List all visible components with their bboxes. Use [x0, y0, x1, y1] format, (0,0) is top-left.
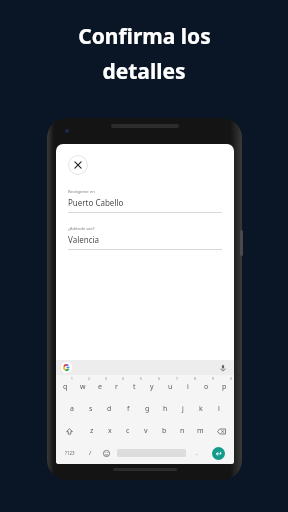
button[interactable]: x — [101, 420, 119, 442]
button[interactable]: t — [125, 375, 143, 398]
staticText: n — [180, 426, 185, 436]
button[interactable]: ¿Adónde vas? — [68, 226, 222, 250]
button[interactable]: u — [161, 375, 179, 398]
button[interactable]: Cerrar — [68, 155, 88, 175]
staticText: p — [222, 382, 227, 392]
staticText: 3 — [105, 377, 107, 381]
button[interactable]: d — [100, 398, 119, 420]
button[interactable]: b — [155, 420, 173, 442]
staticText: 6 — [158, 377, 160, 381]
staticText: x — [108, 426, 112, 436]
staticText: i — [187, 382, 189, 392]
button[interactable]: h — [156, 398, 174, 420]
staticText: 0 — [230, 377, 232, 381]
button[interactable]: s — [81, 398, 100, 420]
staticText: k — [199, 404, 203, 414]
button[interactable]: y — [143, 375, 161, 398]
staticText: m — [197, 426, 204, 436]
button[interactable]: p — [215, 375, 233, 398]
button[interactable]: i — [179, 375, 197, 398]
staticText: o — [204, 382, 209, 392]
staticText: e — [98, 382, 102, 392]
staticText: f — [127, 404, 130, 414]
button[interactable]: k — [192, 398, 210, 420]
button[interactable]: Recógeme en — [68, 189, 222, 213]
staticText: q — [63, 382, 68, 392]
button[interactable]: Retroceso — [209, 420, 233, 442]
staticText: 4 — [122, 377, 124, 381]
button[interactable]: Emoji — [98, 443, 115, 463]
staticText: detalles — [102, 57, 186, 86]
button[interactable]: Búsqueda de Google — [61, 362, 72, 373]
button[interactable]: r — [108, 375, 125, 398]
button[interactable]: c — [119, 420, 137, 442]
staticText: 9 — [212, 377, 214, 381]
staticText: / — [89, 449, 92, 457]
staticText: b — [162, 426, 167, 436]
button[interactable]: w — [74, 375, 91, 398]
staticText: u — [168, 382, 173, 392]
button[interactable]: m — [191, 420, 209, 442]
button[interactable]: j — [174, 398, 192, 420]
staticText: t — [133, 382, 136, 392]
button[interactable]: / — [82, 443, 98, 463]
staticText: ?123 — [65, 450, 75, 456]
staticText: d — [107, 404, 112, 414]
staticText: c — [126, 426, 130, 436]
staticText: v — [144, 426, 148, 436]
button[interactable]: Intro — [212, 447, 225, 460]
staticText: 1 — [71, 377, 73, 381]
staticText: a — [70, 404, 74, 414]
staticText: Puerto Cabello — [68, 197, 124, 208]
staticText: l — [218, 404, 220, 414]
button[interactable]: Dictado por voz — [218, 363, 228, 373]
button[interactable]: v — [137, 420, 155, 442]
staticText: y — [150, 382, 154, 392]
button[interactable]: a — [62, 398, 81, 420]
staticText: Recógeme en — [68, 189, 95, 195]
button[interactable]: f — [119, 398, 138, 420]
button[interactable]: l — [210, 398, 228, 420]
button[interactable]: z — [82, 420, 101, 442]
button[interactable]: o — [197, 375, 215, 398]
staticText: w — [80, 382, 86, 392]
staticText: ¿Adónde vas? — [68, 226, 95, 232]
staticText: h — [163, 404, 168, 414]
staticText: Confirma los — [78, 22, 211, 51]
button[interactable]: n — [173, 420, 191, 442]
staticText: Valencia — [68, 234, 100, 245]
staticText: 5 — [140, 377, 142, 381]
button[interactable]: q — [57, 375, 74, 398]
staticText: j — [182, 404, 184, 414]
button[interactable]: ?123 — [58, 443, 82, 463]
staticText: s — [89, 404, 93, 414]
staticText: 7 — [176, 377, 178, 381]
staticText: 2 — [88, 377, 90, 381]
staticText: z — [90, 426, 94, 436]
staticText: g — [145, 404, 150, 414]
staticText: r — [115, 382, 118, 392]
button[interactable]: g — [138, 398, 156, 420]
button[interactable]: e — [91, 375, 108, 398]
staticText: . — [196, 449, 198, 457]
staticText: 8 — [194, 377, 196, 381]
button[interactable]: Mayúsculas — [57, 420, 82, 442]
